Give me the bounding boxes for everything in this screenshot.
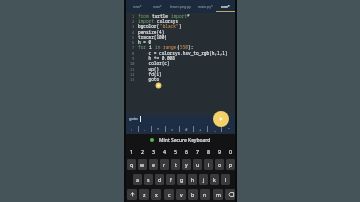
staticText: ): [179, 23, 182, 29]
staticText: 10: [130, 61, 135, 66]
button[interactable]: o: [215, 159, 224, 170]
button[interactable]: f: [166, 174, 175, 185]
staticText: v: [180, 191, 183, 198]
staticText: y: [185, 161, 188, 168]
button[interactable]: Run: [213, 111, 229, 127]
button[interactable]: q: [127, 159, 136, 170]
button[interactable]: *: [152, 125, 165, 133]
button[interactable]: heart.png.py: [167, 0, 194, 13]
staticText: from: [138, 13, 152, 19]
button[interactable]: k: [210, 174, 219, 185]
button[interactable]: u: [193, 159, 202, 170]
staticText: import: [171, 13, 187, 19]
staticText: c = colorsys.hsv_to_rgb(h,1,1): [138, 50, 228, 56]
button[interactable]: Shift: [127, 189, 137, 200]
button[interactable]: t: [171, 159, 180, 170]
button[interactable]: h: [188, 174, 197, 185]
staticText: h += 0.008: [138, 55, 175, 61]
staticText: 4: [132, 30, 135, 35]
button[interactable]: c: [164, 189, 174, 200]
staticText: goto: [129, 116, 138, 121]
staticText: Mint Secure Keyboard: [159, 137, 211, 144]
button[interactable]: b: [188, 189, 198, 200]
button[interactable]: _: [208, 125, 221, 133]
button[interactable]: e: [149, 159, 158, 170]
button[interactable]: new*: [126, 0, 148, 13]
button[interactable]: n: [200, 189, 210, 200]
button[interactable]: m: [213, 189, 223, 200]
button[interactable]: d: [155, 174, 164, 185]
other: Backspace: [227, 191, 234, 198]
button[interactable]: Backspace: [225, 189, 235, 200]
button[interactable]: new*: [216, 0, 235, 13]
staticText: heart.png.py: [170, 4, 191, 9]
button[interactable]: -: [139, 125, 151, 133]
staticText: for: [138, 44, 149, 50]
staticText: _: [214, 127, 216, 132]
staticText: h: [191, 176, 195, 183]
staticText: 1: [132, 14, 135, 19]
button[interactable]: main.py*: [194, 0, 216, 13]
staticText: goto: [138, 76, 160, 82]
button[interactable]: j: [199, 174, 208, 185]
staticText: -: [144, 127, 146, 132]
button[interactable]: y: [182, 159, 191, 170]
button[interactable]: 4: [160, 147, 169, 156]
button[interactable]: 9: [215, 147, 224, 156]
staticText: r: [163, 161, 166, 168]
staticText: s: [147, 176, 150, 183]
staticText: #: [185, 127, 188, 132]
staticText: f: [170, 176, 172, 183]
staticText: import: [138, 18, 157, 24]
button[interactable]: g: [177, 174, 186, 185]
staticText: 6: [185, 148, 188, 155]
staticText: range: [163, 44, 177, 50]
button[interactable]: s: [144, 174, 153, 185]
staticText: q: [130, 161, 134, 168]
staticText: u: [196, 161, 200, 168]
button[interactable]: ": [222, 125, 235, 133]
other: Shift: [130, 192, 135, 197]
staticText: 3: [152, 148, 155, 155]
staticText: 6: [132, 40, 135, 45]
staticText: c: [168, 191, 171, 198]
staticText: 5: [132, 35, 135, 40]
button[interactable]: :: [126, 125, 138, 133]
button[interactable]: +: [194, 125, 207, 133]
staticText: main.py*: [198, 4, 213, 9]
staticText: t: [175, 161, 177, 168]
staticText: p: [229, 161, 233, 168]
staticText: 3: [132, 24, 135, 29]
button[interactable]: 6: [182, 147, 191, 156]
button[interactable]: 8: [204, 147, 213, 156]
button[interactable]: a: [133, 174, 142, 185]
button[interactable]: 7: [193, 147, 202, 156]
button[interactable]: 0: [226, 147, 235, 156]
staticText: new*: [153, 4, 162, 9]
button[interactable]: 2: [138, 147, 147, 156]
staticText: turtle: [152, 13, 171, 19]
button[interactable]: #: [180, 125, 193, 133]
button[interactable]: 5: [171, 147, 180, 156]
staticText: color(c): [138, 60, 170, 66]
staticText: pensize(4): [138, 29, 165, 35]
button[interactable]: r: [160, 159, 169, 170]
staticText: 7: [196, 148, 199, 155]
button[interactable]: 1: [127, 147, 136, 156]
button[interactable]: p: [226, 159, 235, 170]
button[interactable]: =: [166, 125, 179, 133]
button[interactable]: w: [138, 159, 147, 170]
button[interactable]: z: [139, 189, 149, 200]
staticText: m: [216, 191, 221, 198]
button[interactable]: l: [221, 174, 230, 185]
button[interactable]: x: [151, 189, 161, 200]
button[interactable]: v: [176, 189, 186, 200]
staticText: h = 0: [138, 39, 152, 45]
staticText: x: [155, 191, 158, 198]
button[interactable]: new*: [148, 0, 167, 13]
button[interactable]: i: [204, 159, 213, 170]
staticText: colorsys: [157, 18, 179, 24]
button[interactable]: 3: [149, 147, 158, 156]
staticText: w: [140, 161, 145, 168]
staticText: 9: [218, 148, 221, 155]
